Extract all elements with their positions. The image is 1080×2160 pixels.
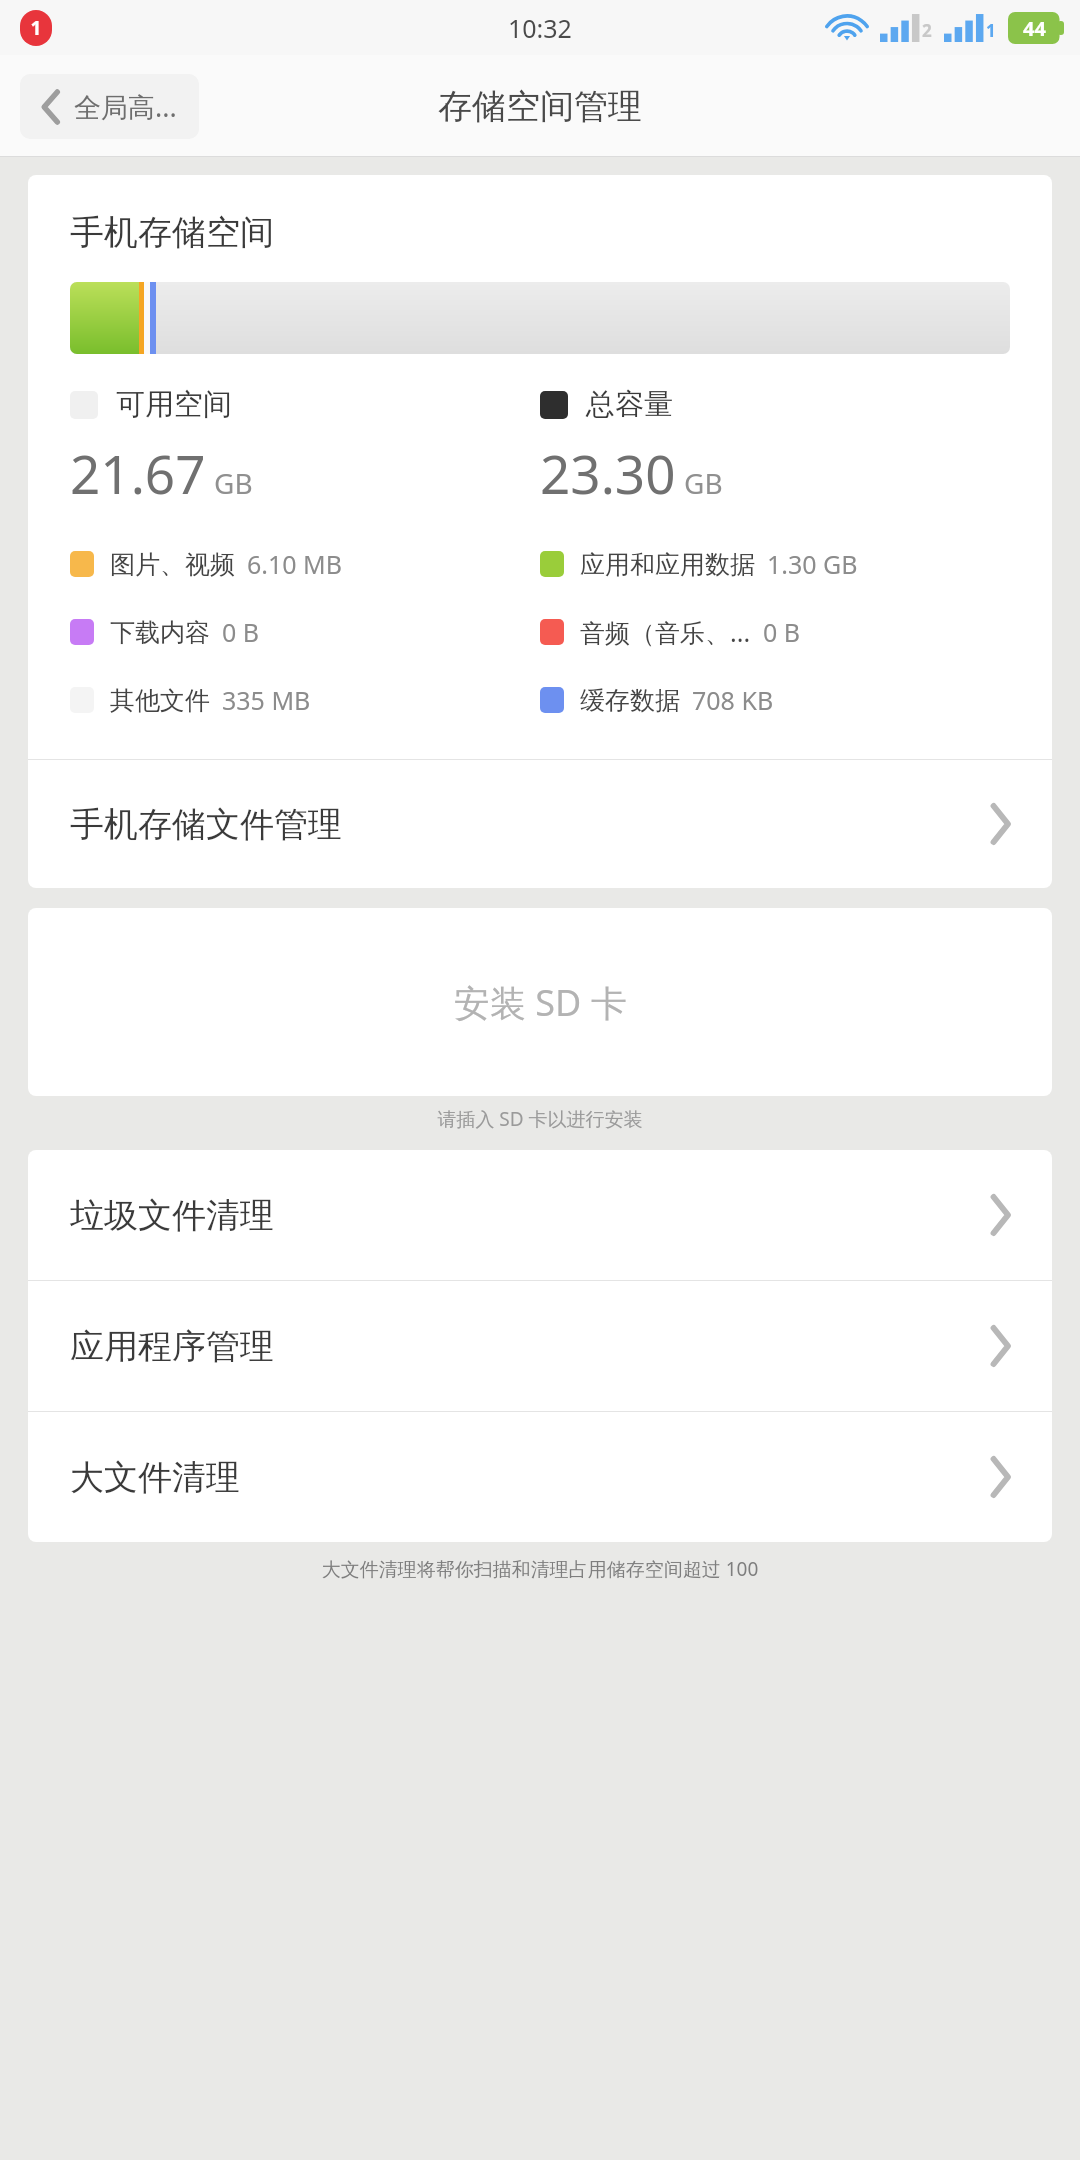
- staticText: 708 KB: [692, 683, 774, 717]
- staticText: 0 B: [222, 615, 260, 649]
- staticText: 应用程序管理: [70, 1325, 990, 1368]
- staticText: 1: [986, 19, 996, 42]
- staticText: 44: [1023, 15, 1046, 42]
- other: Open: [990, 1197, 1010, 1233]
- staticText: 全局高...: [74, 88, 177, 125]
- staticText: 335 MB: [222, 683, 311, 717]
- staticText: 缓存数据: [580, 685, 680, 716]
- staticText: 图片、视频: [110, 549, 235, 580]
- staticText: GB: [684, 464, 723, 502]
- staticText: 应用和应用数据: [580, 549, 755, 580]
- staticText: 大文件清理: [70, 1456, 990, 1499]
- staticText: 2: [922, 19, 932, 42]
- staticText: GB: [214, 464, 253, 502]
- other: Open: [990, 1328, 1010, 1364]
- button[interactable]: 安装 SD 卡: [28, 908, 1052, 1096]
- staticText: 手机存储文件管理: [70, 803, 990, 846]
- staticText: 可用空间: [116, 386, 232, 423]
- staticText: 大文件清理将帮你扫描和清理占用储存空间超过 100: [24, 1556, 1056, 1582]
- staticText: 10:32: [508, 11, 572, 45]
- staticText: 6.10 MB: [247, 547, 343, 581]
- staticText: 安装 SD 卡: [454, 978, 627, 1027]
- staticText: 23.30: [540, 437, 676, 509]
- staticText: 音频（音乐、...: [580, 615, 751, 649]
- staticText: 总容量: [586, 386, 673, 423]
- button[interactable]: 大文件清理: [28, 1412, 1052, 1542]
- staticText: 0 B: [763, 615, 801, 649]
- staticText: 垃圾文件清理: [70, 1194, 990, 1237]
- staticText: 21.67: [70, 437, 206, 509]
- staticText: 其他文件: [110, 685, 210, 716]
- staticText: 请插入 SD 卡以进行安装: [0, 1106, 1080, 1132]
- other: Open: [990, 806, 1010, 842]
- other: Open: [990, 1459, 1010, 1495]
- button[interactable]: 手机存储文件管理: [28, 760, 1052, 888]
- button[interactable]: 应用程序管理: [28, 1281, 1052, 1411]
- button[interactable]: 垃圾文件清理: [28, 1150, 1052, 1280]
- staticText: 1: [20, 15, 52, 41]
- staticText: 下载内容: [110, 617, 210, 648]
- button[interactable]: 全局高...: [20, 74, 199, 139]
- staticText: 1.30 GB: [767, 547, 858, 581]
- staticText: 手机存储空间: [70, 211, 274, 254]
- staticText: 存储空间管理: [438, 85, 642, 128]
